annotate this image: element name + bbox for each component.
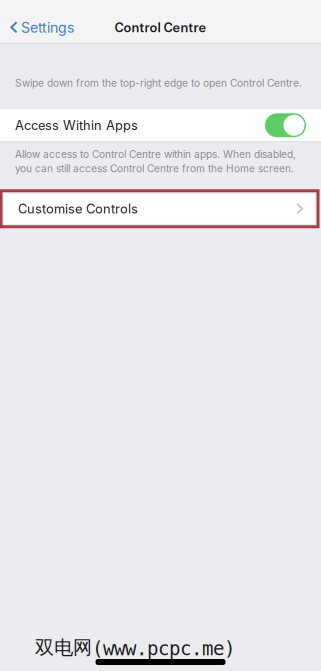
staticText: Swipe down from the top-right edge to op…	[15, 77, 302, 89]
staticText: 双电网(www.pcpc.me)	[35, 636, 235, 660]
staticText: you can still access Control Centre from…	[15, 162, 294, 175]
staticText: Customise Controls	[18, 201, 138, 216]
button[interactable]: Settings	[0, 0, 82, 43]
button[interactable]: Access Within Apps	[0, 109, 321, 141]
staticText: Control Centre	[114, 20, 206, 35]
button[interactable]: Customise Controls	[1, 191, 318, 227]
staticText: Access Within Apps	[15, 117, 138, 133]
staticText: Allow access to Control Centre within ap…	[15, 148, 296, 161]
staticText: Settings	[21, 19, 74, 36]
